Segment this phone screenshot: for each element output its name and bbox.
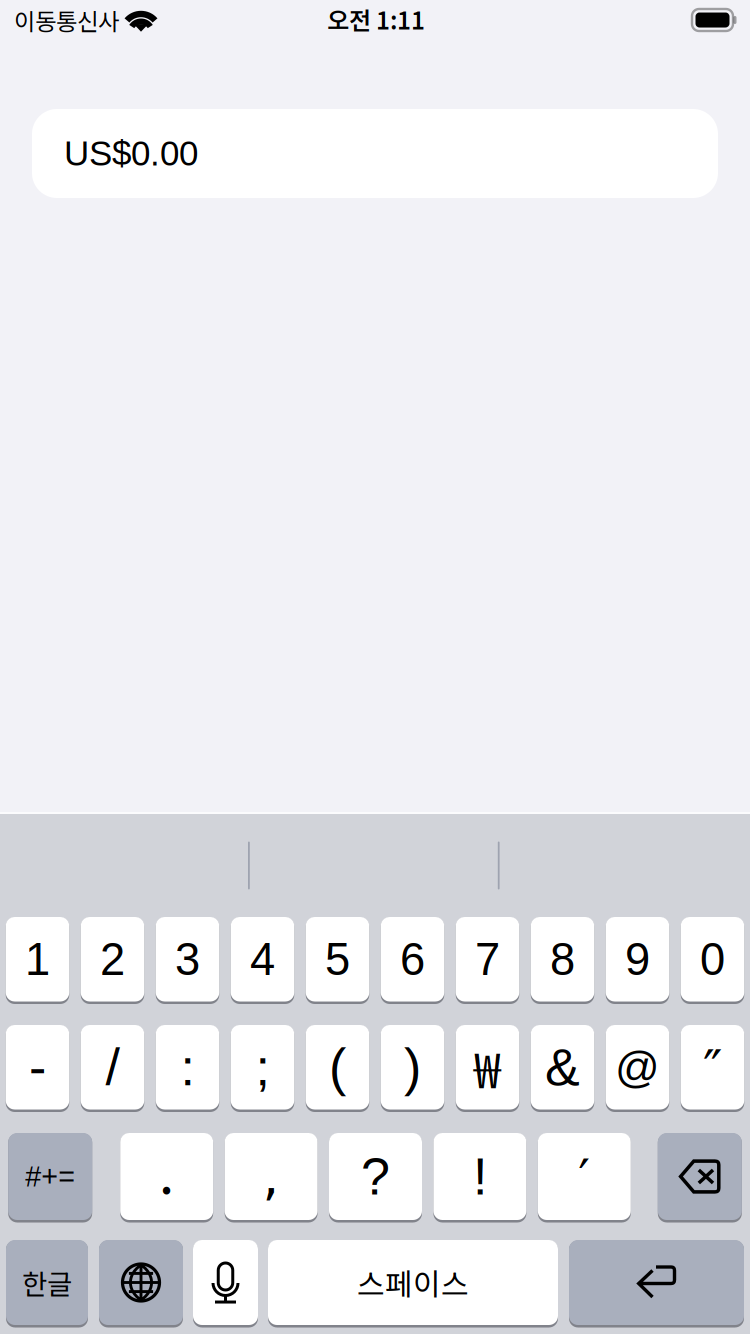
button[interactable]: ? bbox=[329, 1133, 422, 1220]
button[interactable]: ″ bbox=[681, 1025, 744, 1109]
button[interactable]: ; bbox=[231, 1025, 294, 1109]
staticText: #+= bbox=[25, 1160, 75, 1192]
button[interactable]: ′ bbox=[538, 1133, 631, 1220]
staticText: 5 bbox=[325, 934, 350, 984]
button[interactable]: @ bbox=[606, 1025, 669, 1109]
staticText: - bbox=[29, 1038, 46, 1096]
button[interactable]: Dictation bbox=[193, 1240, 258, 1325]
button[interactable]: 2 bbox=[81, 917, 144, 1001]
button[interactable]: & bbox=[531, 1025, 594, 1109]
staticText: . bbox=[159, 1129, 175, 1210]
staticText: US$0.00 bbox=[64, 134, 198, 173]
button[interactable]: #+= bbox=[8, 1133, 92, 1220]
staticText: ? bbox=[361, 1147, 390, 1206]
staticText: ! bbox=[473, 1147, 487, 1206]
button[interactable]: 0 bbox=[681, 917, 744, 1001]
staticText: 0 bbox=[700, 934, 725, 984]
staticText: ″ bbox=[703, 1039, 722, 1099]
staticText: 1 bbox=[25, 934, 50, 984]
button[interactable]: / bbox=[81, 1025, 144, 1109]
button[interactable]: 6 bbox=[381, 917, 444, 1001]
staticText: 4 bbox=[250, 934, 275, 984]
button[interactable]: ( bbox=[306, 1025, 369, 1109]
staticText: & bbox=[545, 1038, 580, 1096]
staticText: 6 bbox=[400, 934, 425, 984]
staticText: ) bbox=[404, 1038, 421, 1096]
button[interactable]: 8 bbox=[531, 917, 594, 1001]
staticText: 이동통신사 bbox=[14, 3, 119, 37]
staticText: / bbox=[105, 1038, 119, 1096]
staticText: 8 bbox=[550, 934, 575, 984]
button[interactable]: : bbox=[156, 1025, 219, 1109]
button[interactable]: . bbox=[120, 1133, 213, 1220]
button[interactable]: 4 bbox=[231, 917, 294, 1001]
button[interactable]: 7 bbox=[456, 917, 519, 1001]
staticText: ′ bbox=[578, 1148, 590, 1209]
button[interactable]: , bbox=[225, 1133, 318, 1220]
button[interactable]: ! bbox=[433, 1133, 526, 1220]
staticText: 오전 1:11 bbox=[327, 2, 425, 36]
button[interactable]: - bbox=[6, 1025, 69, 1109]
staticText: @ bbox=[615, 1043, 660, 1092]
staticText: 3 bbox=[175, 934, 200, 984]
staticText: 한글 bbox=[22, 1263, 72, 1302]
button[interactable]: 한글 bbox=[6, 1240, 88, 1325]
staticText: 7 bbox=[475, 934, 500, 984]
staticText: 스페이스 bbox=[357, 1261, 469, 1304]
staticText: : bbox=[180, 1038, 194, 1096]
staticText: , bbox=[263, 1146, 280, 1207]
staticText: 2 bbox=[100, 934, 125, 984]
staticText: ₩ bbox=[474, 1032, 501, 1102]
button[interactable]: Next keyboard bbox=[99, 1240, 183, 1325]
button[interactable]: 1 bbox=[6, 917, 69, 1001]
staticText: ( bbox=[329, 1038, 346, 1096]
button[interactable]: Return bbox=[569, 1240, 744, 1325]
button[interactable]: US$0.00 bbox=[32, 109, 718, 198]
button[interactable]: 3 bbox=[156, 917, 219, 1001]
staticText: ; bbox=[255, 1038, 269, 1096]
button[interactable]: ₩ bbox=[456, 1025, 519, 1109]
button[interactable]: 스페이스 bbox=[268, 1240, 558, 1325]
button[interactable]: Delete bbox=[658, 1133, 742, 1220]
button[interactable]: 9 bbox=[606, 917, 669, 1001]
button[interactable]: 5 bbox=[306, 917, 369, 1001]
staticText: 9 bbox=[625, 934, 650, 984]
button[interactable]: ) bbox=[381, 1025, 444, 1109]
